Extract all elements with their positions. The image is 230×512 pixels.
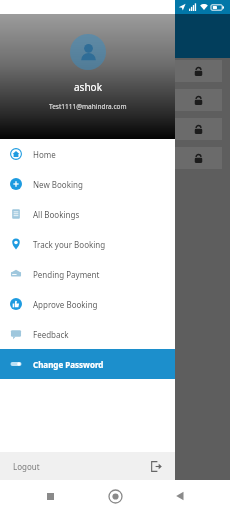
staticText: Logout (13, 461, 40, 472)
button[interactable]: All Bookings (0, 199, 175, 229)
staticText: Change Password (33, 359, 104, 370)
staticText: Feedback (33, 329, 69, 340)
staticText: ashok (74, 80, 102, 94)
staticText: Approve Booking (33, 299, 98, 310)
button[interactable]: Feedback (0, 319, 175, 349)
button[interactable]: Home (100, 481, 130, 511)
button[interactable]: Recents (35, 481, 65, 511)
staticText: New Booking (33, 179, 83, 190)
other: Logout (151, 461, 162, 472)
button[interactable]: Pending Payment (0, 259, 175, 289)
button[interactable]: Home (0, 139, 175, 169)
staticText: Track your Booking (33, 239, 106, 250)
button[interactable]: Back (165, 481, 195, 511)
button[interactable]: Approve Booking (0, 289, 175, 319)
button[interactable]: Logout (0, 452, 175, 480)
staticText: Pending Payment (33, 269, 100, 280)
staticText: Home (33, 149, 56, 160)
button[interactable]: Track your Booking (0, 229, 175, 259)
button[interactable]: New Booking (0, 169, 175, 199)
staticText: Test1111@mahindra.com (49, 102, 127, 111)
staticText: All Bookings (33, 209, 80, 220)
button[interactable]: Change Password (0, 349, 175, 379)
